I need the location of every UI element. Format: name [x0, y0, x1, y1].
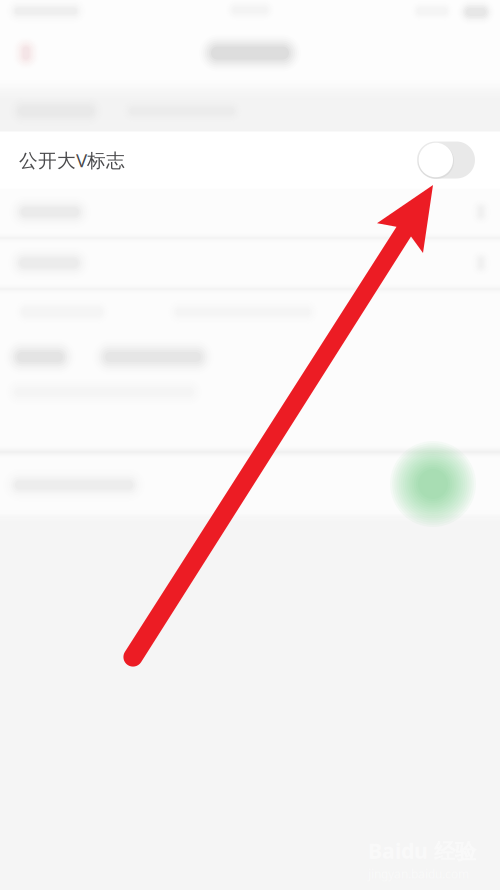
button[interactable]: 公开大V标志: [0, 131, 500, 188]
staticText: 公开大V标志: [19, 148, 125, 172]
